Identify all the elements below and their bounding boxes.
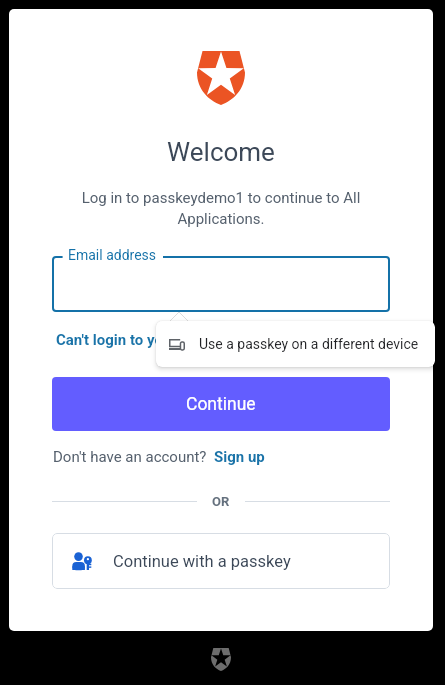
staticText: Email address: [68, 247, 157, 263]
staticText: Welcome: [9, 137, 433, 167]
staticText: Can't login to your account?: [56, 331, 243, 349]
button[interactable]: Email address: [52, 256, 390, 312]
staticText: Continue with a passkey: [113, 552, 291, 571]
staticText: OR: [212, 494, 230, 509]
button[interactable]: Use a passkey on a different device: [156, 321, 435, 367]
button[interactable]: Can't login to your account?: [56, 331, 243, 349]
staticText: Don't have an account?: [53, 448, 207, 466]
staticText: Continue: [186, 394, 256, 415]
staticText: Log in to passkeydemo1 to continue to Al…: [54, 189, 388, 228]
button[interactable]: Sign up: [214, 448, 265, 466]
button[interactable]: Continue with a passkey: [52, 533, 390, 589]
button[interactable]: Continue: [52, 377, 390, 431]
other: Auth0: [211, 648, 231, 671]
staticText: Use a passkey on a different device: [199, 336, 419, 352]
staticText: Sign up: [214, 448, 265, 466]
